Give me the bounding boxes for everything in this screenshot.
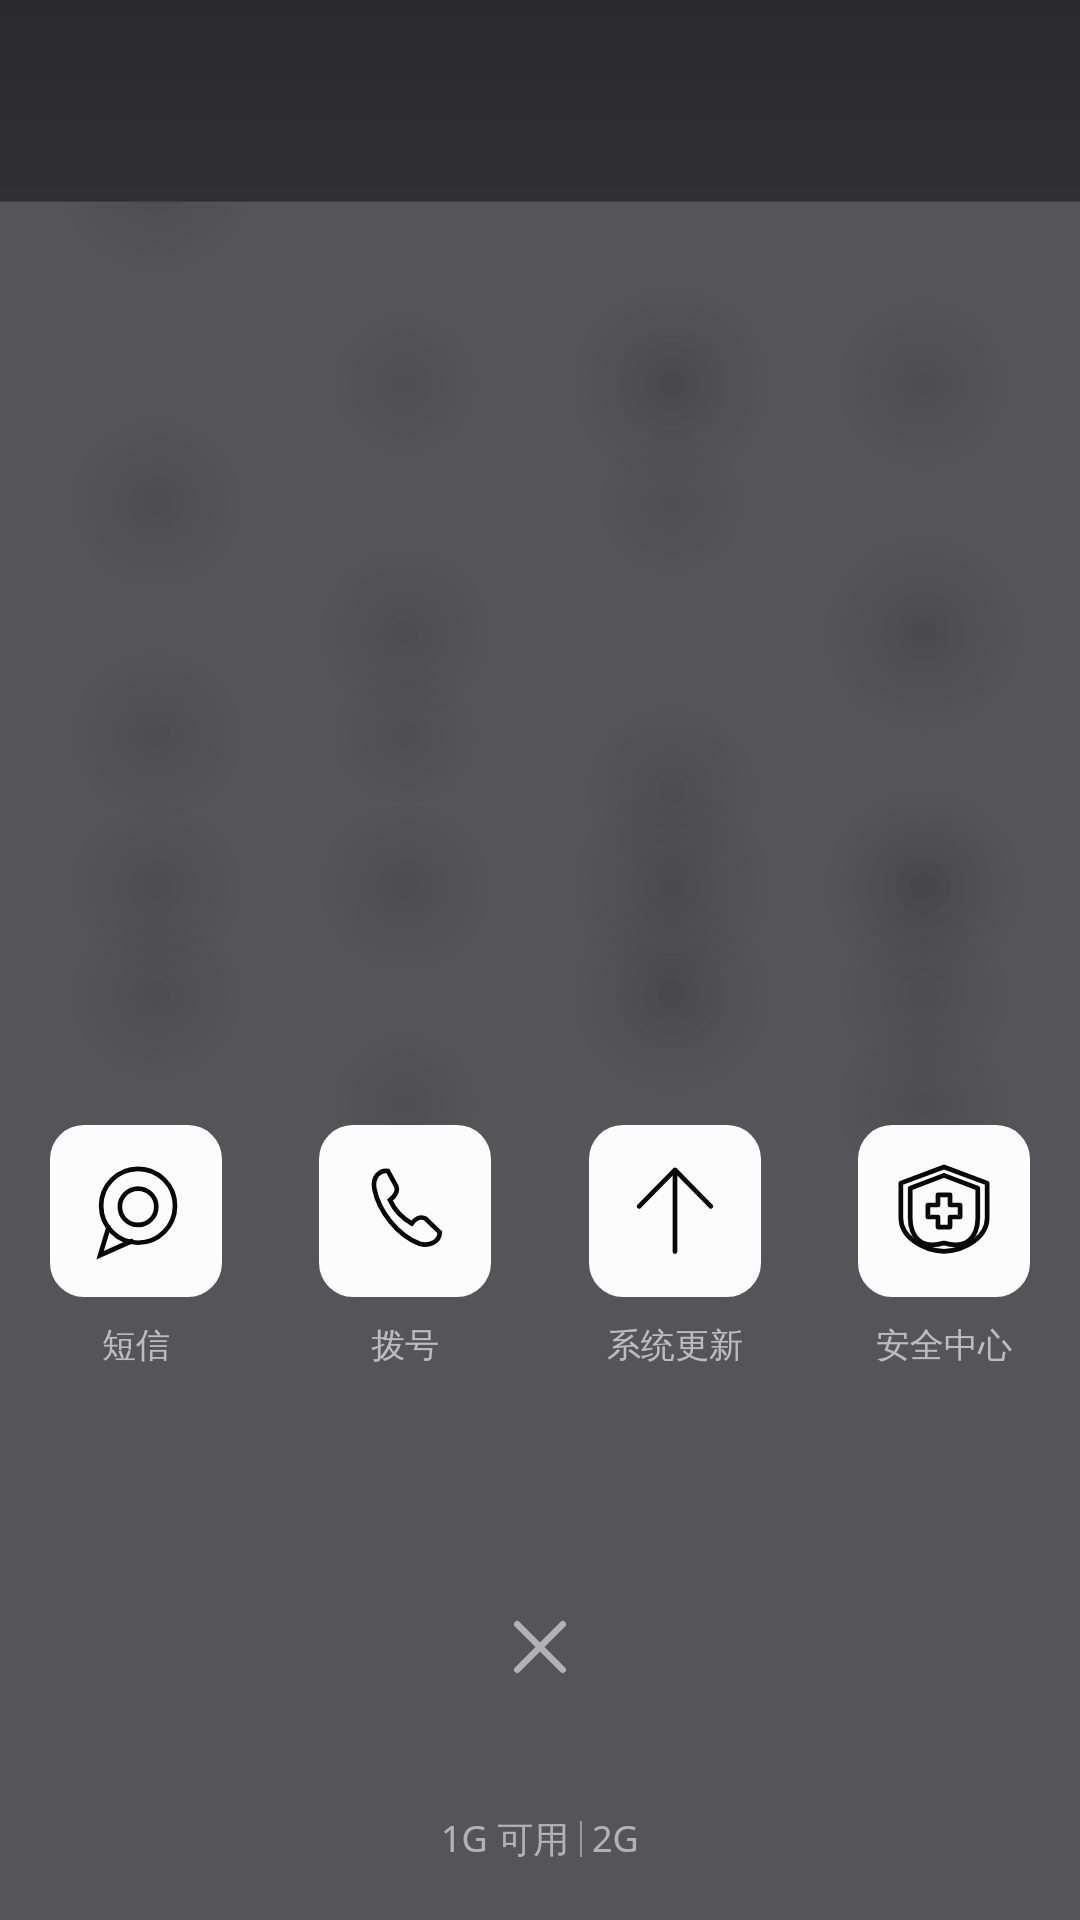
staticText: 短信 xyxy=(102,1324,170,1367)
button[interactable]: 系统更新 xyxy=(589,1125,761,1367)
button[interactable]: 安全中心 xyxy=(858,1125,1030,1367)
staticText: 1G 可用 xyxy=(441,1814,570,1863)
staticText: 拨号 xyxy=(371,1324,439,1367)
staticText: 安全中心 xyxy=(876,1324,1012,1367)
button[interactable]: 拨号 xyxy=(319,1125,491,1367)
button[interactable]: 关闭 xyxy=(475,1582,605,1712)
staticText: 2G xyxy=(592,1814,639,1863)
button[interactable]: 短信 xyxy=(50,1125,222,1367)
staticText: 系统更新 xyxy=(607,1324,743,1367)
